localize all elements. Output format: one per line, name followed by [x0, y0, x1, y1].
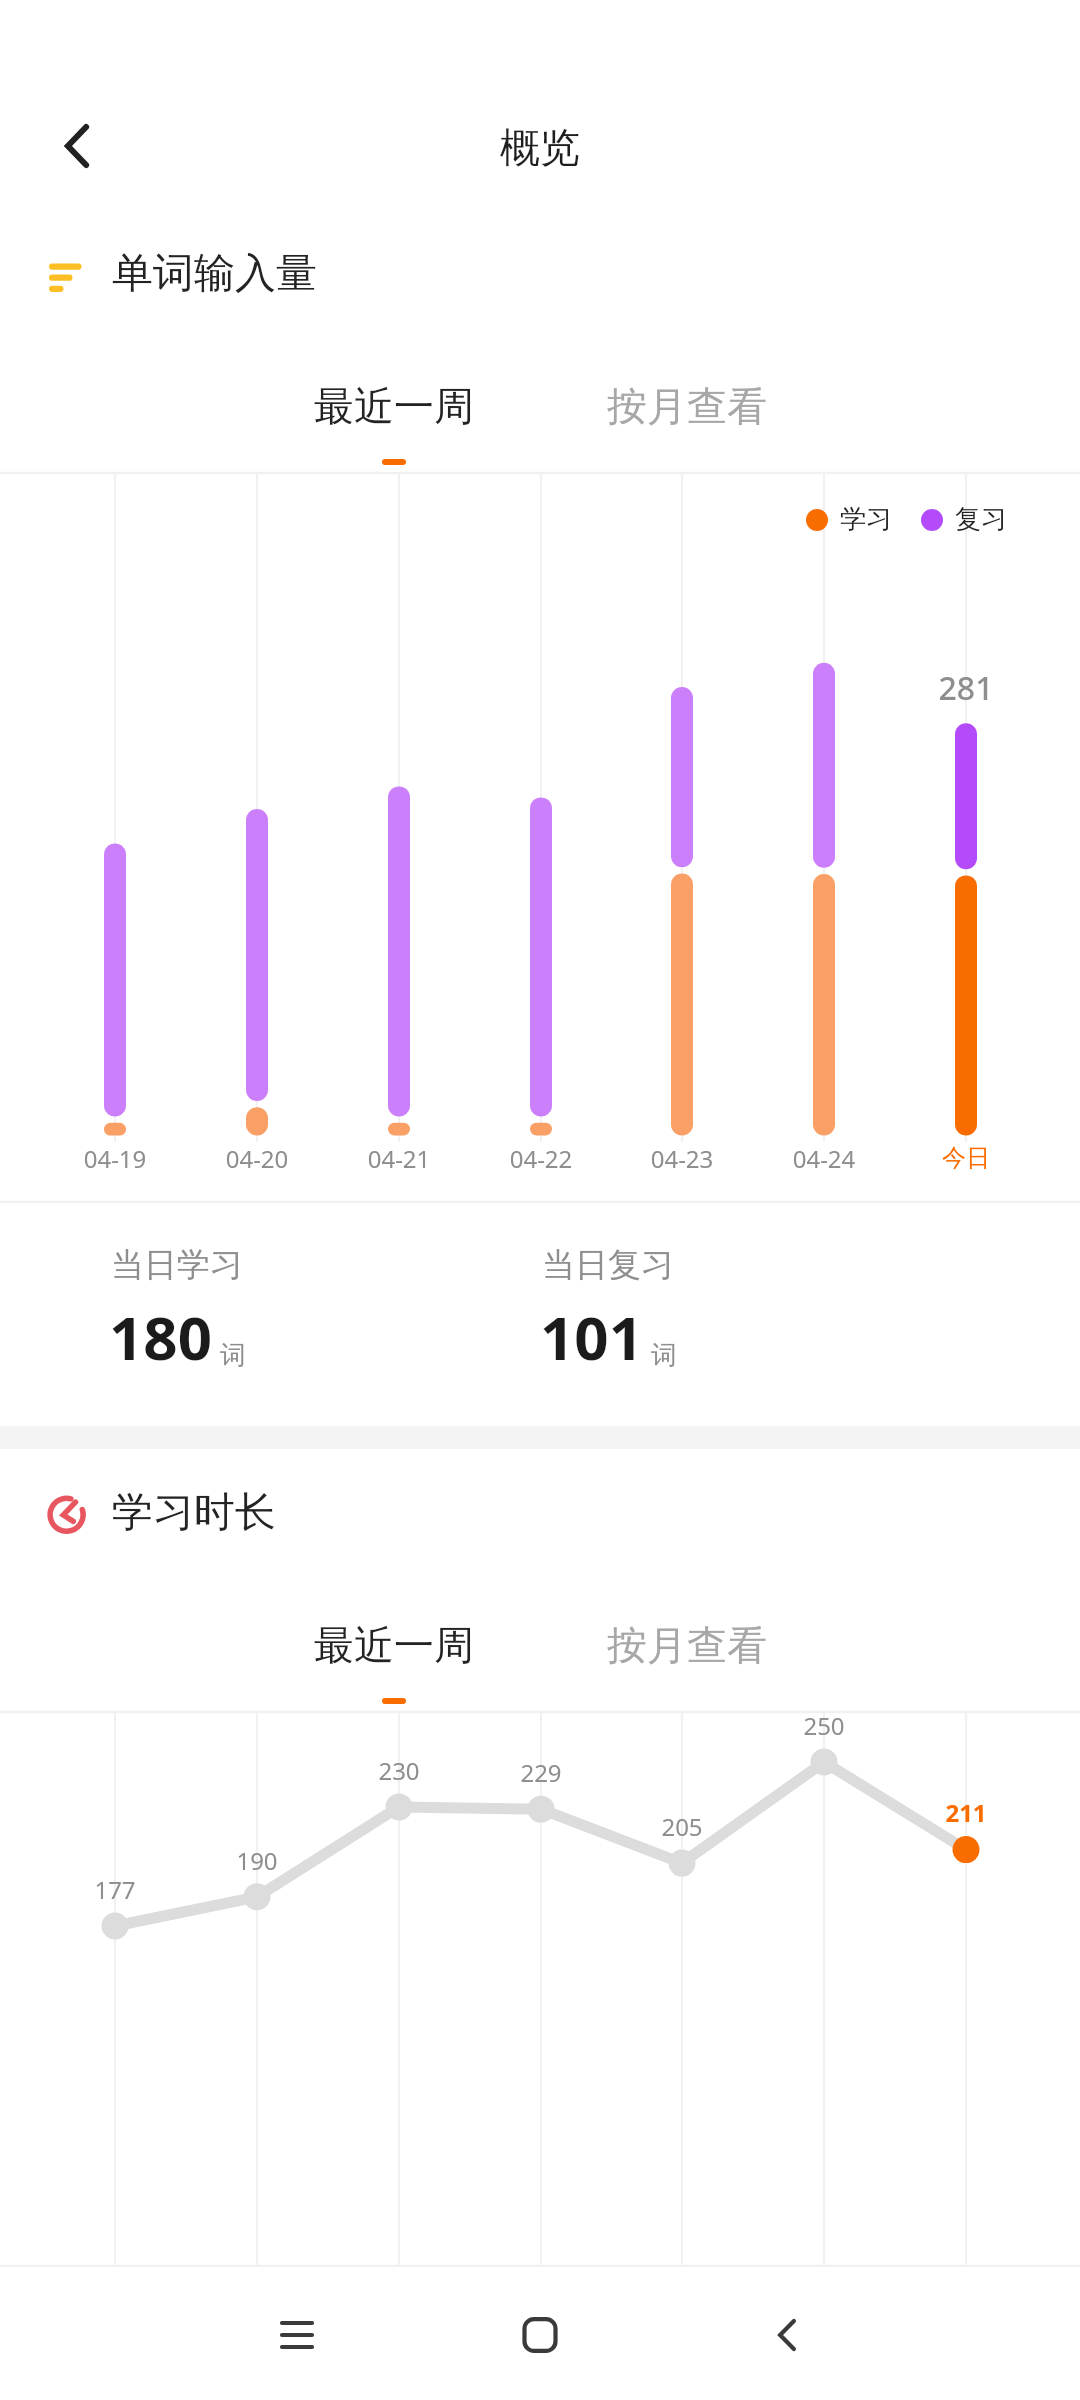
button[interactable]: 主页: [492, 2287, 588, 2383]
button[interactable]: 返回: [739, 2287, 835, 2383]
staticText: 04-20: [187, 1142, 327, 1174]
staticText: 281: [906, 666, 1026, 709]
button[interactable]: 返回: [41, 110, 113, 182]
staticText: 177: [45, 1873, 185, 1905]
staticText: 04-19: [45, 1142, 185, 1174]
staticText: 229: [471, 1756, 611, 1788]
button[interactable]: 最近任务: [249, 2287, 345, 2383]
staticText: 101: [540, 1296, 643, 1376]
staticText: 211: [896, 1796, 1036, 1828]
staticText: 按月查看: [567, 1620, 807, 1670]
staticText: 当日复习: [542, 1244, 674, 1286]
button[interactable]: 最近一周: [274, 1605, 514, 1715]
staticText: 最近一周: [274, 381, 514, 431]
staticText: 04-24: [754, 1142, 894, 1174]
staticText: 04-22: [471, 1142, 611, 1174]
staticText: 概览: [0, 122, 1080, 172]
staticText: 今日: [896, 1143, 1036, 1173]
button[interactable]: 按月查看: [567, 366, 807, 476]
staticText: 180: [109, 1296, 212, 1376]
staticText: 205: [612, 1810, 752, 1842]
staticText: 当日学习: [111, 1244, 243, 1286]
staticText: 230: [329, 1754, 469, 1786]
staticText: 250: [754, 1709, 894, 1741]
staticText: 按月查看: [567, 381, 807, 431]
staticText: 最近一周: [274, 1620, 514, 1670]
button[interactable]: 最近一周: [274, 366, 514, 476]
staticText: 单词输入量: [112, 248, 317, 300]
staticText: 词: [220, 1339, 246, 1372]
staticText: 复习: [955, 503, 1007, 536]
staticText: 词: [651, 1339, 677, 1372]
staticText: 学习: [840, 503, 892, 536]
staticText: 04-23: [612, 1142, 752, 1174]
staticText: 学习时长: [112, 1487, 276, 1539]
staticText: 190: [187, 1844, 327, 1876]
button[interactable]: 按月查看: [567, 1605, 807, 1715]
staticText: 04-21: [329, 1142, 469, 1174]
